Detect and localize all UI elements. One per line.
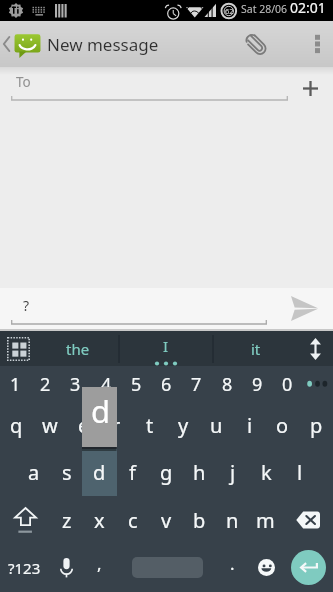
staticText: d	[93, 459, 106, 486]
other: Navigate up	[3, 37, 10, 51]
staticText: x	[94, 507, 105, 534]
staticText: 4	[101, 372, 112, 397]
button[interactable]: h	[183, 449, 216, 496]
staticText: v	[161, 507, 172, 534]
button[interactable]: 5	[121, 366, 151, 402]
button[interactable]: 0	[272, 366, 302, 402]
button[interactable]: Add recipient	[294, 72, 326, 104]
button[interactable]: 6	[151, 366, 181, 402]
button[interactable]: x	[83, 497, 116, 544]
staticText: k	[261, 459, 272, 486]
staticText: c	[128, 507, 138, 534]
staticText: w	[42, 412, 58, 439]
button[interactable]: Voice input	[49, 544, 84, 591]
staticText: I	[163, 336, 169, 356]
button[interactable]: .	[218, 544, 247, 591]
staticText: i	[247, 412, 253, 439]
button[interactable]: 7	[181, 366, 211, 402]
button[interactable]: u	[200, 402, 233, 449]
staticText: the	[66, 339, 90, 359]
button[interactable]: 1	[0, 366, 30, 402]
staticText: j	[230, 459, 236, 486]
staticText: 9	[252, 372, 263, 397]
staticText: 6	[161, 372, 172, 397]
button[interactable]: t	[133, 402, 166, 449]
staticText: h	[193, 459, 206, 486]
staticText: l	[297, 459, 303, 486]
button[interactable]: I	[119, 331, 213, 366]
button[interactable]: the	[36, 331, 119, 366]
staticText: 3	[70, 372, 81, 397]
button[interactable]: f	[116, 449, 149, 496]
button[interactable]: Navigate up	[0, 21, 159, 67]
button[interactable]: Send	[286, 290, 322, 326]
button[interactable]: Enter	[284, 544, 333, 591]
button[interactable]: j	[216, 449, 249, 496]
button[interactable]: r	[100, 402, 133, 449]
staticText: 2	[40, 372, 51, 397]
button[interactable]: c	[116, 497, 149, 544]
button[interactable]: a	[17, 449, 50, 496]
button[interactable]: Shift	[0, 497, 50, 544]
staticText: z	[62, 507, 72, 534]
staticText: r	[112, 412, 121, 439]
button[interactable]: 9	[242, 366, 272, 402]
button[interactable]: q	[0, 402, 33, 449]
staticText: ?123	[8, 558, 41, 578]
button[interactable]: Keyboard layout	[0, 331, 36, 366]
staticText: New message	[47, 33, 159, 56]
button[interactable]: n	[216, 497, 249, 544]
button[interactable]: Expand suggestions	[298, 331, 333, 366]
button[interactable]: i	[233, 402, 266, 449]
staticText: d	[91, 390, 111, 432]
button[interactable]: Space	[115, 544, 218, 591]
button[interactable]: k	[250, 449, 283, 496]
button[interactable]: w	[33, 402, 66, 449]
staticText: 0	[282, 372, 293, 397]
button[interactable]: ,	[84, 544, 115, 591]
button[interactable]: More options	[301, 21, 333, 67]
staticText: ?	[23, 296, 30, 315]
staticText: y	[178, 412, 189, 439]
button[interactable]: y	[167, 402, 200, 449]
staticText: 5	[131, 372, 142, 397]
staticText: it	[251, 339, 261, 359]
staticText: g	[160, 459, 173, 486]
staticText: m	[256, 507, 275, 534]
button[interactable]: Emoji	[249, 544, 284, 591]
button[interactable]: 3	[60, 366, 90, 402]
staticText: a	[28, 459, 40, 486]
staticText: o	[276, 412, 289, 439]
button[interactable]: o	[266, 402, 299, 449]
button[interactable]: p	[300, 402, 333, 449]
button[interactable]: d	[83, 449, 116, 496]
button[interactable]: m	[249, 497, 282, 544]
staticText: Sat 28/06	[241, 2, 288, 16]
staticText: p	[310, 412, 323, 439]
staticText: 02:01	[290, 0, 326, 17]
staticText: s	[62, 459, 72, 486]
staticText: To	[16, 73, 31, 91]
staticText: n	[226, 507, 239, 534]
button[interactable]: 4	[91, 366, 121, 402]
button[interactable]: 2	[30, 366, 60, 402]
button[interactable]: Backspace	[283, 497, 333, 544]
button[interactable]: it	[213, 331, 298, 366]
button[interactable]: Attach	[238, 21, 274, 67]
staticText: 7	[191, 372, 202, 397]
button[interactable]: e	[67, 402, 100, 449]
button[interactable]: g	[150, 449, 183, 496]
button[interactable]: s	[50, 449, 83, 496]
staticText: e	[78, 412, 90, 439]
button[interactable]: 8	[212, 366, 242, 402]
staticText: t	[146, 412, 154, 439]
staticText: 8	[222, 372, 233, 397]
button[interactable]: ?123	[0, 544, 49, 591]
staticText: 1	[10, 372, 21, 397]
button[interactable]: b	[183, 497, 216, 544]
button[interactable]: v	[150, 497, 183, 544]
button[interactable]: l	[283, 449, 316, 496]
button[interactable]: z	[50, 497, 83, 544]
staticText: ,	[97, 552, 102, 575]
staticText: 62	[225, 6, 234, 16]
